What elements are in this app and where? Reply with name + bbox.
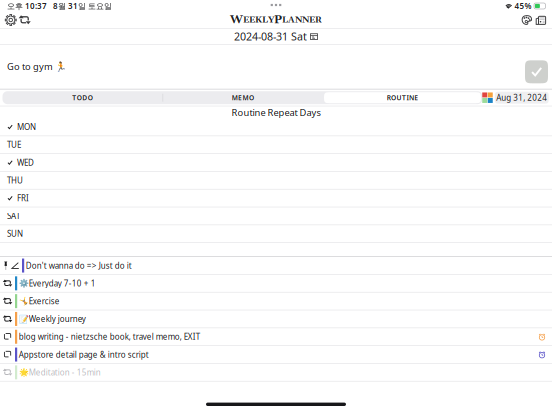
- staticText: Aug 31, 2024: [496, 92, 547, 103]
- staticText: blog writing - nietzsche book, travel me…: [19, 331, 200, 342]
- staticText: 📝Weekly journey: [19, 314, 86, 324]
- button[interactable]: 🤸Exercise: [0, 293, 552, 310]
- button[interactable]: 📝Weekly journey: [0, 310, 552, 328]
- staticText: ROUTINE: [387, 93, 418, 102]
- button[interactable]: WED: [0, 154, 552, 172]
- button[interactable]: News: [534, 12, 548, 28]
- button[interactable]: ⚙️Everyday 7-10 + 1: [0, 275, 552, 293]
- button[interactable]: Appstore detail page & intro script: [0, 346, 552, 364]
- staticText: FRI: [17, 193, 29, 203]
- staticText: Don't wanna do => Just do it: [26, 260, 132, 271]
- staticText: SAT: [7, 211, 20, 221]
- button[interactable]: Theme: [519, 12, 534, 28]
- staticText: TUE: [7, 139, 21, 150]
- staticText: Routine Repeat Days: [231, 106, 320, 119]
- staticText: THU: [7, 175, 23, 186]
- button[interactable]: TUE: [0, 136, 552, 154]
- button[interactable]: SUN: [0, 225, 552, 243]
- staticText: 45%: [512, 1, 533, 11]
- staticText: ⚙️Everyday 7-10 + 1: [19, 278, 96, 289]
- staticText: 🌟Meditation - 15min: [19, 367, 101, 378]
- staticText: LANNER: [282, 14, 322, 26]
- button[interactable]: Don't wanna do => Just do it: [0, 257, 552, 275]
- button[interactable]: SAT: [0, 207, 552, 225]
- staticText: MEMO: [232, 93, 254, 102]
- button[interactable]: 🌟Meditation - 15min: [0, 364, 552, 382]
- button[interactable]: Repeat: [18, 12, 32, 28]
- button[interactable]: ROUTINE: [322, 91, 482, 104]
- button[interactable]: 2024-08-31 Sat: [0, 29, 552, 44]
- staticText: EEKLY: [243, 14, 274, 26]
- staticText: SUN: [7, 228, 23, 239]
- staticText: TODO: [72, 93, 93, 102]
- staticText: WED: [17, 157, 34, 168]
- staticText: 오후 10:37 8월 31일 토요일: [7, 1, 112, 11]
- staticText: 2024-08-31 Sat: [234, 29, 307, 44]
- button[interactable]: TODO: [2, 91, 162, 104]
- button[interactable]: Settings: [3, 12, 18, 28]
- staticText: Go to gym 🏃: [7, 60, 67, 73]
- staticText: Appstore detail page & intro script: [19, 349, 149, 360]
- button[interactable]: Complete task: [525, 60, 548, 83]
- staticText: 🤸Exercise: [19, 296, 60, 306]
- button[interactable]: MON: [0, 118, 552, 136]
- staticText: P: [274, 13, 282, 27]
- button[interactable]: Aug 31, 2024: [483, 91, 548, 104]
- button[interactable]: MEMO: [163, 91, 322, 104]
- staticText: MON: [17, 122, 36, 132]
- button[interactable]: THU: [0, 172, 552, 190]
- button[interactable]: blog writing - nietzsche book, travel me…: [0, 328, 552, 346]
- staticText: W: [230, 13, 243, 27]
- button[interactable]: FRI: [0, 190, 552, 207]
